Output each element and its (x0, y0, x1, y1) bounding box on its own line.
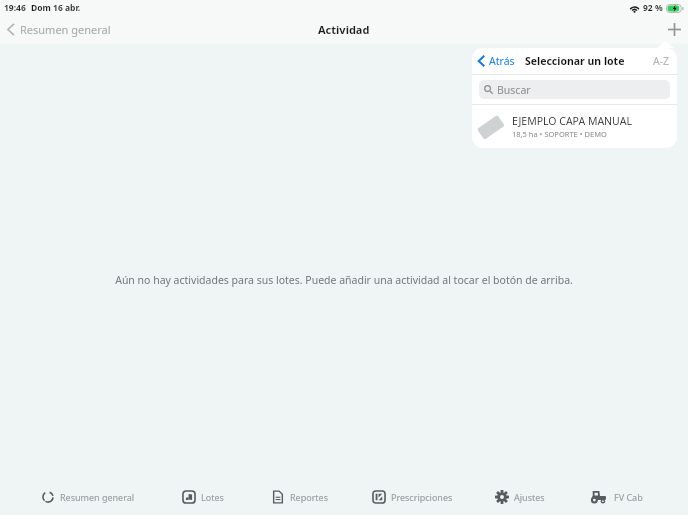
staticText: FV Cab (614, 491, 643, 503)
button[interactable]: EJEMPLO CAPA MANUAL (472, 105, 677, 148)
button[interactable]: Prescripciones (372, 484, 453, 510)
button[interactable]: Añadir actividad (660, 15, 688, 43)
button[interactable]: Atrás (472, 50, 519, 72)
staticText: Prescripciones (391, 491, 453, 503)
staticText: Dom 16 abr. (31, 2, 81, 14)
staticText: 19:46 (4, 2, 26, 14)
button[interactable]: Resumen general (0, 18, 117, 41)
button[interactable]: Lotes (182, 484, 224, 510)
staticText: Aún no hay actividades para sus lotes. P… (0, 273, 688, 287)
button[interactable]: Reportes (271, 484, 329, 510)
staticText: Resumen general (20, 22, 111, 37)
staticText: 92 % (643, 2, 663, 14)
button[interactable]: FV Cab (590, 484, 643, 510)
button[interactable]: Resumen general (41, 484, 135, 510)
staticText: Buscar (497, 83, 531, 97)
button[interactable]: Ajustes (495, 484, 545, 510)
staticText: Ajustes (514, 491, 545, 503)
staticText: EJEMPLO CAPA MANUAL (512, 114, 632, 128)
staticText: Lotes (201, 491, 224, 503)
staticText: Reportes (290, 491, 329, 503)
button[interactable]: A-Z (646, 50, 677, 72)
staticText: Actividad (318, 22, 370, 37)
staticText: Resumen general (60, 491, 135, 503)
staticText: Seleccionar un lote (525, 54, 625, 68)
staticText: Atrás (489, 54, 515, 68)
button[interactable]: Buscar (479, 80, 670, 99)
staticText: 18,5 ha • SOPORTE • DEMO (512, 129, 607, 139)
